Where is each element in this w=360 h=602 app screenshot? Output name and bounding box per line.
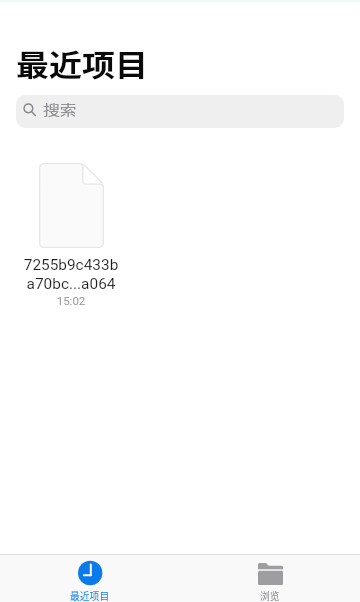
- button[interactable]: Browse: [180, 554, 360, 602]
- staticText: 最近项目: [70, 589, 110, 602]
- other: Recents: [78, 561, 102, 585]
- staticText: 搜索: [43, 99, 77, 119]
- staticText: 最近项目: [16, 42, 148, 80]
- staticText: 浏览: [260, 589, 280, 602]
- other: Browse: [258, 563, 283, 585]
- button[interactable]: Recents: [0, 554, 180, 602]
- button[interactable]: 搜索: [16, 95, 344, 128]
- staticText: 7255b9c433ba70bc...a064: [23, 256, 119, 293]
- staticText: 15:02: [23, 294, 119, 307]
- button[interactable]: 7255b9c433ba70bc...a064: [23, 163, 119, 307]
